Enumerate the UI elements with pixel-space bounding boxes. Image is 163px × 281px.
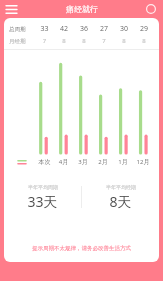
staticText: 月经期 [9, 38, 35, 45]
staticText: 本次 [35, 158, 54, 166]
staticText: 1月 [113, 158, 133, 166]
button[interactable]: Menu [3, 1, 19, 17]
staticText: 3月 [73, 158, 93, 166]
staticText: 8 [54, 37, 74, 45]
staticText: 4月 [54, 158, 73, 166]
staticText: 42 [54, 24, 74, 34]
staticText: 30 [114, 24, 134, 34]
staticText: 总周期 [9, 26, 35, 33]
staticText: 33天 [27, 192, 58, 211]
staticText: 8 [74, 37, 94, 45]
staticText: 8天 [109, 192, 132, 211]
staticText: 12月 [133, 158, 153, 166]
staticText: 33 [35, 24, 54, 34]
button[interactable]: Profile [143, 1, 159, 17]
button[interactable]: 半年平均周期 [4, 184, 81, 211]
staticText: 7 [35, 37, 54, 45]
staticText: 29 [134, 24, 154, 34]
staticText: 7 [94, 37, 114, 45]
staticText: 半年平均经期 [106, 184, 136, 190]
staticText: 27 [94, 24, 114, 34]
button[interactable]: 半年平均经期 [82, 184, 159, 211]
staticText: 8 [134, 37, 154, 45]
staticText: 8 [114, 37, 134, 45]
staticText: 提示周期不太规律，请务必改善生活方式 [32, 245, 131, 252]
staticText: 半年平均周期 [28, 184, 58, 190]
staticText: 痛经就行 [66, 4, 98, 14]
staticText: 2月 [93, 158, 113, 166]
staticText: 36 [74, 24, 94, 34]
